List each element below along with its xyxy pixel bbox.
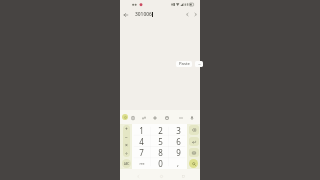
button[interactable]: Stickers [163,114,170,121]
button[interactable]: 6 [169,136,187,147]
button[interactable]: 9 [169,147,187,158]
button[interactable]: More tools [177,114,184,121]
button[interactable]: 0 [151,158,169,169]
button[interactable]: − [123,133,130,141]
button[interactable]: ABC [122,159,131,168]
staticText: − [125,134,128,141]
button[interactable]: 3 [169,124,187,136]
staticText: 9 [176,147,181,158]
button[interactable]: + [123,125,130,133]
staticText: 301006 [135,11,152,18]
staticText: 5 [158,136,163,147]
staticText: 0 [158,158,163,169]
button[interactable]: Home [159,174,164,179]
staticText: гте [139,161,145,166]
button[interactable]: гте [132,158,151,169]
button[interactable]: ÷ [123,149,130,157]
button[interactable]: Settings [151,114,158,121]
button[interactable]: 1 [132,124,151,136]
button[interactable]: Translate [140,114,147,121]
staticText: 3 [176,125,181,136]
button[interactable]: Back [122,11,130,19]
staticText: 2 [158,125,163,136]
staticText: 4 [139,136,144,147]
button[interactable]: 7 [132,147,151,158]
staticText: 8 [158,147,163,158]
button[interactable]: Next match [192,11,199,18]
staticText: 1 [139,125,144,136]
button[interactable]: Previous match [184,11,191,18]
button[interactable]: 4 [132,136,151,147]
staticText: × [125,142,128,149]
button[interactable]: Recent apps [181,174,186,179]
button[interactable]: Keyboard menu [122,114,128,120]
button[interactable]: Backspace [189,125,199,135]
staticText: 7 [139,147,144,158]
staticText: , [177,159,179,169]
staticText: 6 [176,136,181,147]
button[interactable]: Search [189,159,198,168]
staticText: ÷ [125,150,128,157]
staticText: ABC [124,162,130,166]
button[interactable]: Clipboard [129,114,136,121]
button[interactable]: Screenshot [189,148,199,157]
button[interactable]: Voice input [188,114,195,121]
button[interactable]: More options [195,61,203,67]
staticText: Paste [179,61,190,67]
staticText: + [125,126,128,133]
button[interactable]: 8 [151,147,169,158]
button[interactable]: × [123,141,130,149]
button[interactable]: 5 [151,136,169,147]
button[interactable]: Return [189,137,199,146]
button[interactable]: Paste [176,61,192,67]
button[interactable]: , [169,158,187,169]
button[interactable]: 2 [151,124,169,136]
